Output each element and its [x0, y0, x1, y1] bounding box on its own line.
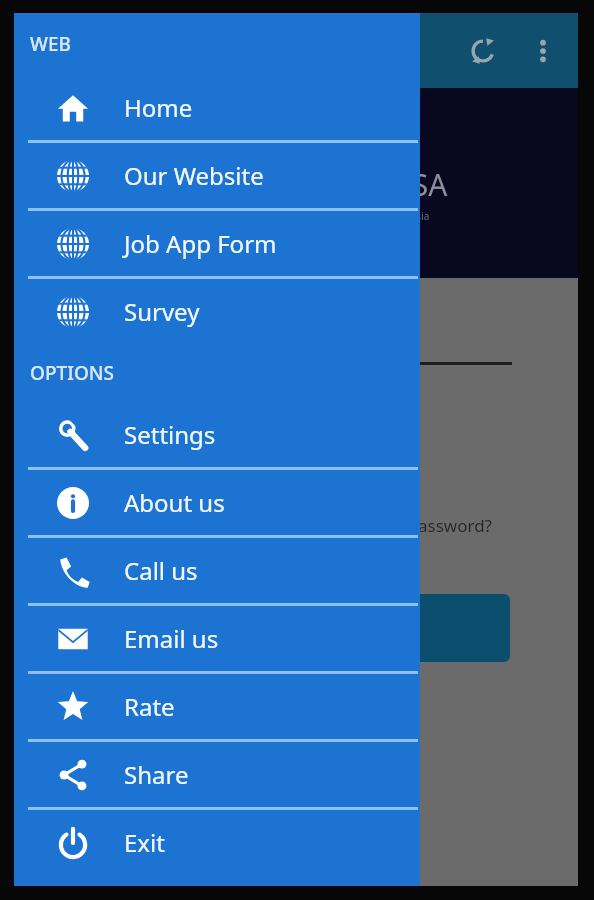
staticText: n Indonesia — [374, 209, 430, 223]
staticText: Survey — [124, 295, 200, 328]
staticText: Exit — [124, 826, 165, 859]
button[interactable]: Our Website — [14, 143, 420, 208]
button[interactable]: Share — [14, 742, 420, 807]
button[interactable]: Job App Form — [14, 211, 420, 276]
button[interactable]: Home — [14, 75, 420, 140]
staticText: Rate — [124, 690, 175, 723]
staticText: Call us — [124, 554, 198, 587]
button[interactable]: Settings — [14, 402, 420, 467]
staticText: WEB — [30, 31, 71, 57]
staticText: assword? — [418, 514, 492, 537]
staticText: Share — [124, 758, 189, 791]
staticText: Email us — [124, 622, 219, 655]
button[interactable]: Rate — [14, 674, 420, 739]
staticText: Job App Form — [124, 227, 277, 260]
button[interactable]: Refresh — [459, 27, 507, 75]
button[interactable]: Survey — [14, 279, 420, 344]
staticText: Settings — [124, 418, 216, 451]
button[interactable]: More options — [519, 27, 567, 75]
staticText: OPTIONS — [30, 360, 114, 386]
button[interactable]: Email us — [14, 606, 420, 671]
staticText: Our Website — [124, 159, 264, 192]
staticText: Home — [124, 91, 193, 124]
staticText: About us — [124, 486, 225, 519]
button[interactable] — [354, 594, 510, 662]
staticText: KASA — [374, 164, 448, 205]
button[interactable]: Call us — [14, 538, 420, 603]
button[interactable]: Exit — [14, 810, 420, 875]
button[interactable]: About us — [14, 470, 420, 535]
